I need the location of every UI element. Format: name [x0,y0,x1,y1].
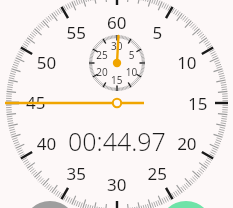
button[interactable]: Reset [23,201,77,208]
button[interactable]: Start stopwatch [159,201,213,208]
button[interactable]: Stopwatch dial [6,0,228,200]
